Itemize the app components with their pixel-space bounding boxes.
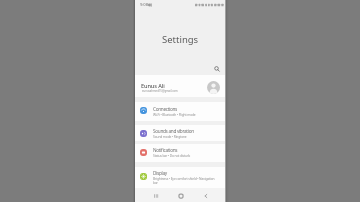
- staticText: Connections: [153, 106, 178, 112]
- button[interactable]: Sounds and vibration: [135, 125, 226, 141]
- staticText: Display: [153, 170, 167, 176]
- staticText: Notifications: [153, 147, 178, 153]
- staticText: 9:08: [140, 2, 148, 8]
- staticText: Status bar • Do not disturb: [153, 153, 191, 157]
- staticText: Sounds and vibration: [153, 128, 194, 134]
- button[interactable]: Recent apps: [149, 189, 162, 202]
- staticText: Sound mode • Ringtone: [153, 134, 187, 138]
- button[interactable]: Eunus Ali: [135, 75, 226, 97]
- staticText: Settings: [162, 33, 199, 46]
- staticText: Brightness • Eye comfort shield • Naviga…: [153, 176, 215, 184]
- staticText: Eunus Ali: [141, 82, 165, 90]
- staticText: Wi-Fi • Bluetooth • Flight mode: [153, 112, 196, 116]
- button[interactable]: Connections: [135, 102, 226, 121]
- button[interactable]: Notifications: [135, 144, 226, 162]
- button[interactable]: Home: [174, 189, 187, 202]
- button[interactable]: Back: [199, 189, 212, 202]
- staticText: eunusahmed15@gmail.com: [142, 89, 178, 93]
- button[interactable]: Display: [135, 167, 226, 188]
- button[interactable]: Search: [212, 64, 221, 73]
